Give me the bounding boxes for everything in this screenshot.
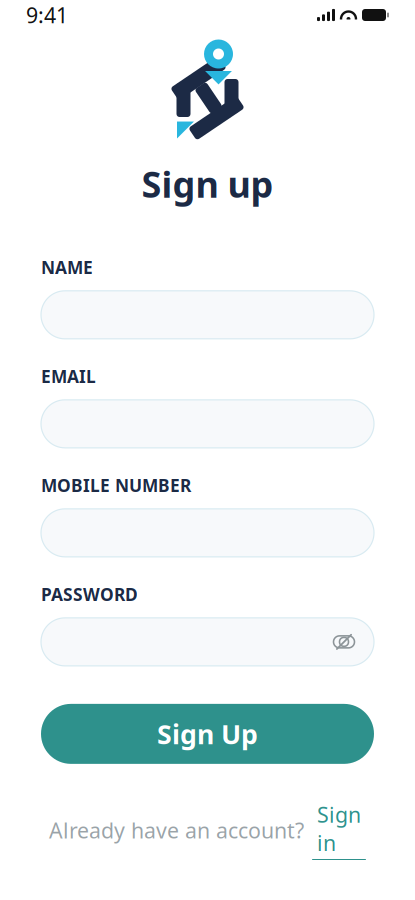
button[interactable] — [41, 400, 374, 448]
staticText: EMAIL — [41, 365, 96, 388]
staticText: NAME — [41, 256, 93, 279]
staticText: MOBILE NUMBER — [41, 474, 191, 497]
button[interactable]: Sign Up — [41, 704, 374, 764]
staticText: Sign up — [141, 160, 273, 208]
staticText: Sign Up — [157, 716, 258, 752]
button[interactable]: Sign in — [312, 800, 366, 860]
staticText: Sign in — [317, 800, 361, 857]
button[interactable] — [41, 509, 374, 557]
button[interactable] — [41, 291, 374, 339]
staticText: PASSWORD — [41, 583, 138, 606]
staticText: Already have an account? — [49, 816, 304, 844]
button[interactable] — [41, 618, 374, 666]
staticText: 9:41 — [26, 1, 68, 29]
